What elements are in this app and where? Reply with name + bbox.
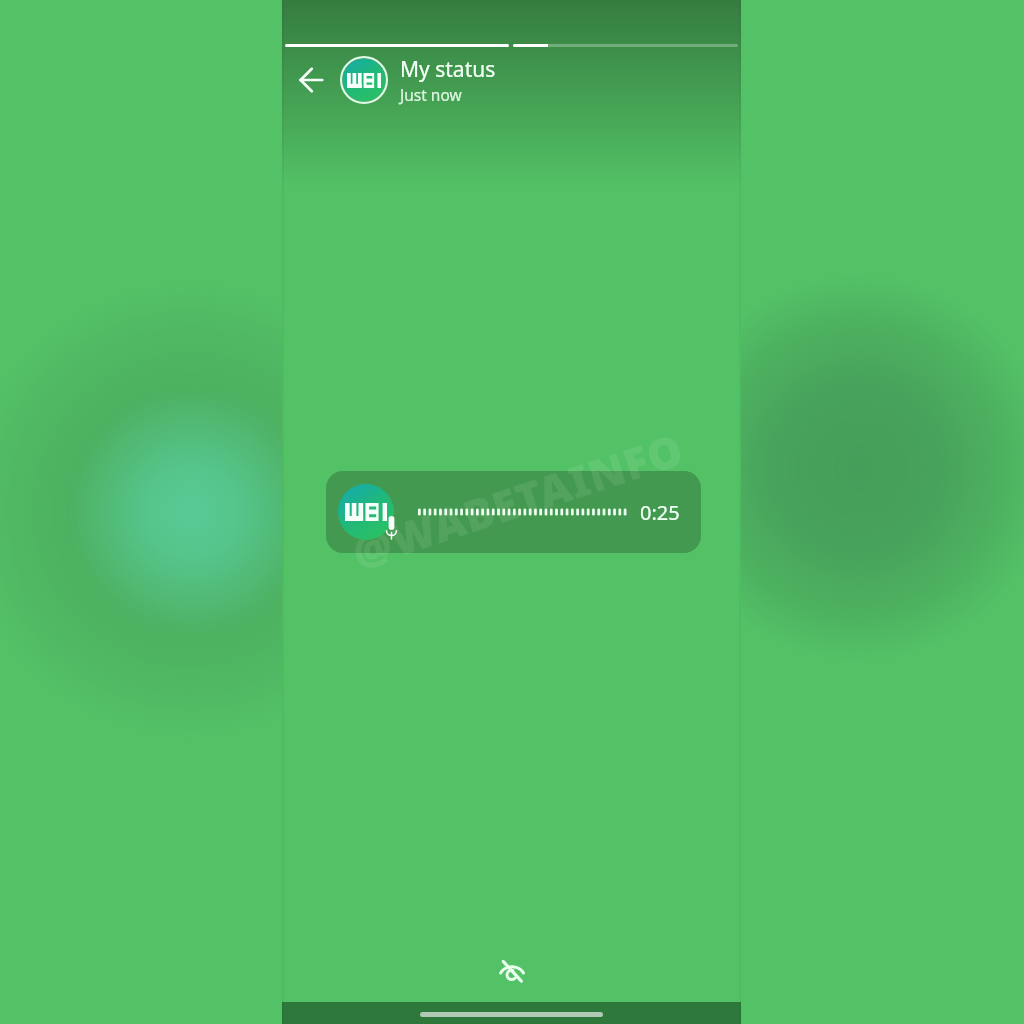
staticText: @WABETAINFO <box>345 419 691 581</box>
staticText: Just now <box>400 84 462 105</box>
button[interactable]: Hide status <box>492 951 532 991</box>
staticText: My status <box>400 55 496 84</box>
button[interactable]: Back <box>289 58 333 102</box>
staticText: 0:25 <box>640 499 680 526</box>
button[interactable]: Play voice status, 0:25 <box>326 471 701 553</box>
button[interactable]: My status <box>333 55 741 105</box>
